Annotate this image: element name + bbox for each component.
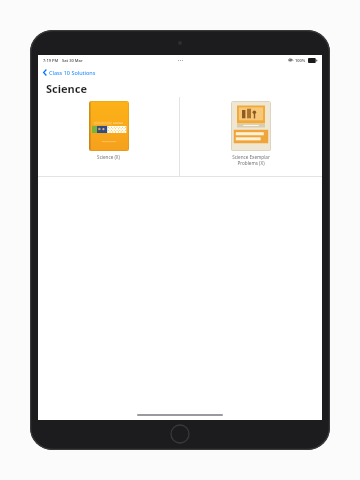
button[interactable]: Science Exemplar Problems (X) xyxy=(180,97,322,177)
staticText: Science (X) xyxy=(97,154,120,160)
staticText: 7:19 PM xyxy=(43,58,59,63)
button[interactable]: Science (X) xyxy=(38,97,179,177)
staticText: Class 10 Solutions xyxy=(49,69,96,76)
staticText: Science Exemplar Problems (X) xyxy=(232,154,270,166)
button[interactable]: Back xyxy=(43,66,322,79)
staticText: 100% xyxy=(295,58,306,63)
staticText: Sat 30 Mar xyxy=(62,58,83,63)
other: Back xyxy=(43,69,47,76)
other: Home xyxy=(170,424,190,444)
staticText: Science xyxy=(46,81,87,96)
